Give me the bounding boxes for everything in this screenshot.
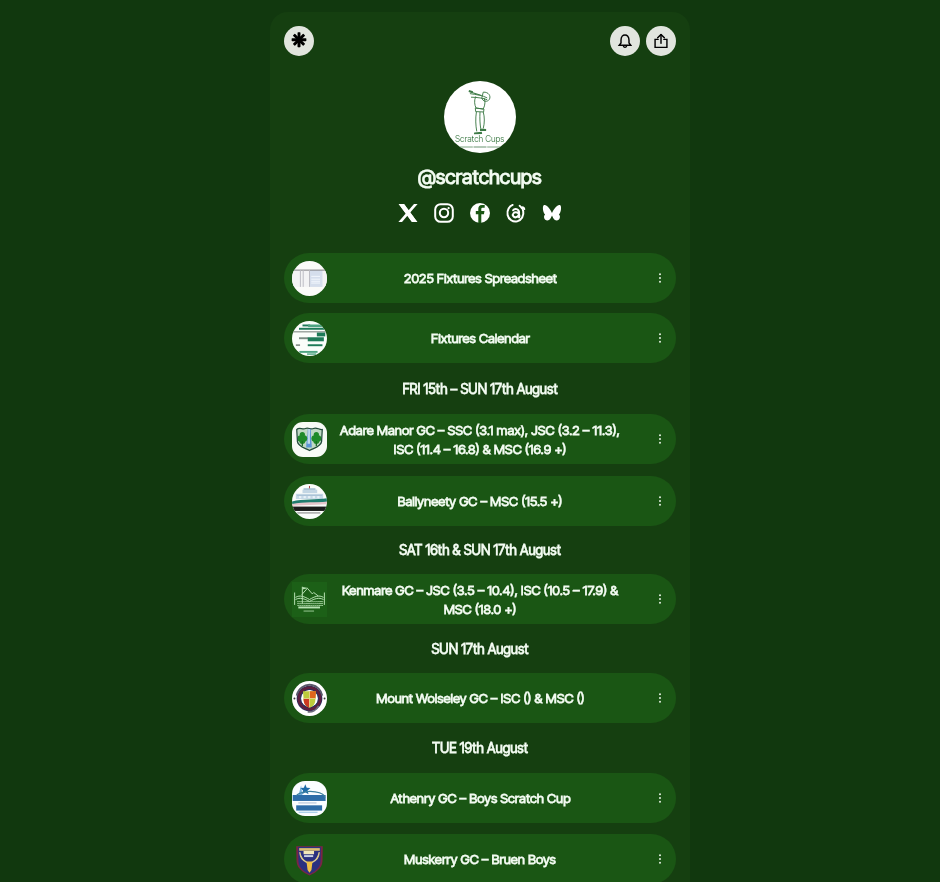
button[interactable]: Mount Wolseley GC – ISC () & MSC () xyxy=(284,673,676,723)
button[interactable]: Adare Manor GC – SSC (3.1 max), JSC (3.2… xyxy=(284,414,676,464)
staticText: TUE 19th August xyxy=(432,740,528,756)
button[interactable]: Bluesky xyxy=(534,195,570,231)
button[interactable]: More options xyxy=(648,686,672,710)
button[interactable]: Ballyneety GC – MSC (15.5 +) xyxy=(284,476,676,526)
button[interactable]: Facebook xyxy=(462,195,498,231)
button[interactable]: Linktree home xyxy=(284,26,314,56)
button[interactable]: Threads xyxy=(498,195,534,231)
button[interactable]: Kenmare GC – JSC (3.5 – 10.4), ISC (10.5… xyxy=(284,574,676,624)
staticText: SUN 17th August xyxy=(431,641,529,657)
staticText: Muskerry GC – Bruen Boys xyxy=(404,851,556,867)
staticText: Kenmare GC – JSC (3.5 – 10.4), ISC (10.5… xyxy=(334,582,626,617)
staticText: FRI 15th – SUN 17th August xyxy=(402,381,558,397)
staticText: @scratchcups xyxy=(418,165,542,189)
staticText: Mount Wolseley GC – ISC () & MSC () xyxy=(376,690,585,706)
staticText: Ballyneety GC – MSC (15.5 +) xyxy=(397,493,563,509)
button[interactable]: Fixtures Calendar xyxy=(284,313,676,363)
button[interactable]: X xyxy=(390,195,426,231)
button[interactable]: More options xyxy=(648,847,672,871)
button[interactable]: 2025 Fixtures Spreadsheet xyxy=(284,253,676,303)
staticText: Scratch Cups xyxy=(455,134,505,144)
button[interactable]: More options xyxy=(648,427,672,451)
button[interactable]: Instagram xyxy=(426,195,462,231)
staticText: 2025 Fixtures Spreadsheet xyxy=(404,270,557,286)
button[interactable]: Muskerry GC – Bruen Boys xyxy=(284,834,676,882)
staticText: Athenry GC – Boys Scratch Cup xyxy=(390,790,571,806)
button[interactable]: Athenry GC – Boys Scratch Cup xyxy=(284,773,676,823)
button[interactable]: Share xyxy=(646,26,676,56)
button[interactable]: More options xyxy=(648,786,672,810)
button[interactable]: More options xyxy=(648,326,672,350)
button[interactable]: Notifications xyxy=(610,26,640,56)
staticText: SAT 16th & SUN 17th August xyxy=(399,542,561,558)
staticText: Fixtures Calendar xyxy=(431,330,530,346)
staticText: Adare Manor GC – SSC (3.1 max), JSC (3.2… xyxy=(334,422,626,457)
button[interactable]: More options xyxy=(648,489,672,513)
button[interactable]: More options xyxy=(648,587,672,611)
button[interactable]: More options xyxy=(648,266,672,290)
